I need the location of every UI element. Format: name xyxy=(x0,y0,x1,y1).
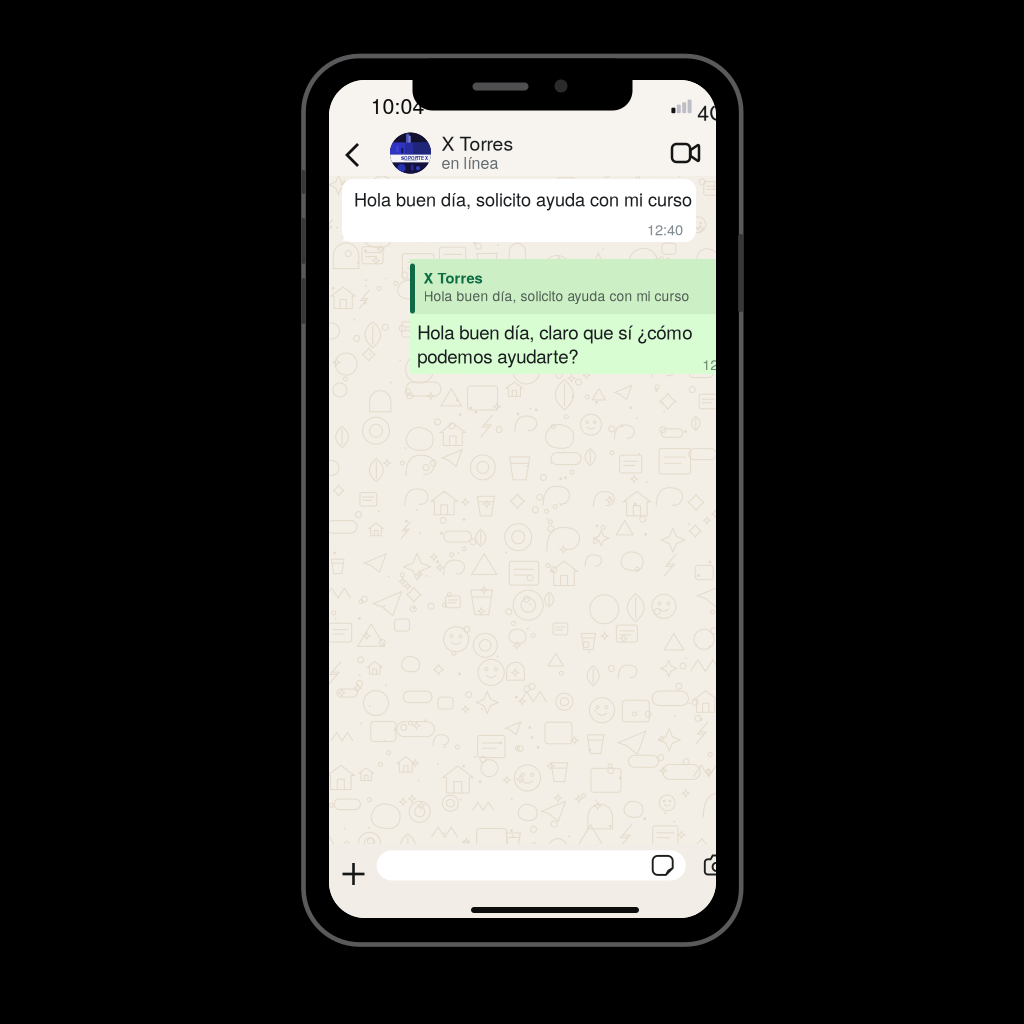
button[interactable]: Back xyxy=(334,132,370,178)
staticText: 12:40 xyxy=(647,218,683,239)
staticText: Hola buen día, claro que sí ¿cómo xyxy=(417,318,692,345)
staticText: SOPORTE X xyxy=(401,155,428,161)
staticText: X Torres xyxy=(423,267,482,288)
staticText: Hola buen día, solicito ayuda con mi cur… xyxy=(354,186,692,212)
button[interactable]: Camera xyxy=(697,847,737,882)
staticText: podemos ayudarte? xyxy=(417,342,578,369)
button[interactable]: Video call xyxy=(662,134,709,172)
button[interactable]: Attach xyxy=(332,853,374,895)
staticText: 10:04 xyxy=(370,89,424,120)
staticText: X Torres xyxy=(441,129,513,156)
staticText: en línea xyxy=(441,151,498,173)
staticText: 12 xyxy=(702,353,718,374)
button[interactable]: SOPORTE X xyxy=(390,133,542,174)
staticText: Hola buen día, solicito ayuda con mi cur… xyxy=(423,285,689,305)
staticText: 4G xyxy=(697,96,726,127)
